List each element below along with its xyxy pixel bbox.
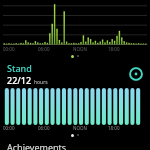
staticText: Achievements (7, 141, 67, 150)
button[interactable]: Steps chart (0, 0, 150, 46)
staticText: 00:00 (3, 125, 15, 131)
staticText: hours (34, 79, 48, 86)
staticText: 06:00 (38, 46, 50, 52)
staticText: 00:00 (3, 46, 15, 52)
staticText: Stand (7, 62, 32, 74)
staticText: NOON (73, 46, 87, 52)
staticText: NOON (73, 125, 87, 131)
button[interactable]: Achievements (0, 141, 150, 150)
staticText: 22/12 (7, 74, 32, 86)
staticText: 06:00 (38, 125, 50, 131)
button[interactable]: Stand goal ring (128, 66, 144, 82)
button[interactable]: Stand (7, 62, 144, 86)
button[interactable]: Stand hours chart (4, 88, 141, 125)
staticText: 18:00 (108, 125, 120, 131)
staticText: 18:00 (108, 46, 120, 52)
